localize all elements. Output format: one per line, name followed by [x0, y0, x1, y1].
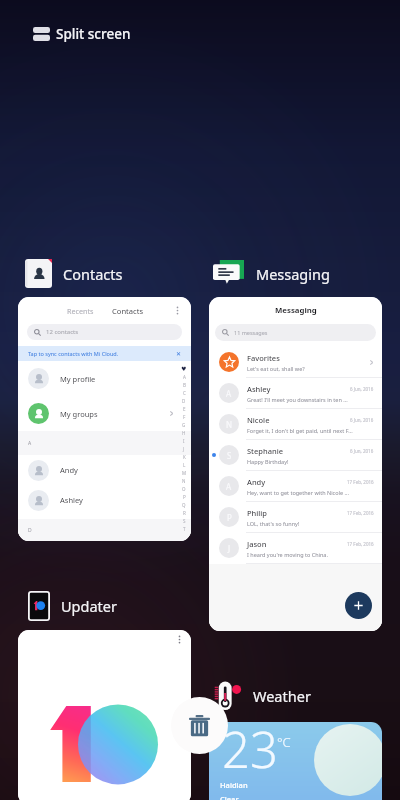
- button[interactable]: Recents: [18, 297, 191, 541]
- staticText: My groups: [60, 409, 98, 419]
- button[interactable]: [18, 630, 191, 800]
- staticText: Philip: [247, 508, 268, 518]
- staticText: C: [183, 390, 186, 396]
- staticText: S: [183, 518, 186, 524]
- staticText: I: [183, 438, 185, 444]
- button[interactable]: 23: [209, 722, 382, 800]
- staticText: 23: [222, 722, 278, 783]
- staticText: 6 Jun, 2016: [350, 448, 374, 454]
- staticText: Forget it, I don't bl get paid, until ne…: [247, 427, 353, 434]
- staticText: A: [226, 481, 232, 492]
- button[interactable]: Messaging: [209, 297, 382, 631]
- button[interactable]: N: [209, 409, 382, 439]
- staticText: R: [183, 510, 186, 516]
- staticText: My profile: [60, 374, 96, 384]
- button[interactable]: 12 contacts: [27, 324, 182, 340]
- staticText: Andy: [247, 477, 266, 487]
- staticText: °C: [277, 733, 291, 751]
- staticText: Tap to sync contacts with Mi Cloud.: [28, 350, 119, 357]
- staticText: Jason: [247, 539, 267, 549]
- staticText: M: [182, 470, 187, 476]
- button[interactable]: 11 messages: [215, 324, 376, 341]
- staticText: Favorites: [247, 353, 280, 363]
- staticText: Contacts: [63, 264, 123, 284]
- button[interactable]: Favorites: [209, 347, 382, 377]
- button[interactable]: Delete all: [171, 697, 228, 754]
- staticText: S: [227, 450, 232, 461]
- staticText: Andy: [60, 465, 78, 475]
- staticText: 6 Jun, 2016: [350, 417, 374, 423]
- staticText: Weather: [253, 686, 311, 706]
- staticText: 17 Feb, 2016: [347, 510, 374, 516]
- button[interactable]: My groups: [18, 396, 191, 431]
- button[interactable]: My profile: [18, 361, 191, 396]
- button[interactable]: Messaging: [213, 260, 330, 287]
- staticText: Clear: [220, 794, 239, 800]
- staticText: A: [28, 440, 32, 447]
- button[interactable]: Split screen: [33, 25, 131, 43]
- staticText: Contacts: [112, 306, 144, 316]
- staticText: 17 Feb, 2016: [347, 541, 374, 547]
- staticText: J: [228, 543, 231, 554]
- button[interactable]: J: [209, 533, 382, 563]
- staticText: Updater: [61, 596, 117, 616]
- staticText: Messaging: [256, 264, 330, 284]
- staticText: Stephanie: [247, 446, 283, 456]
- staticText: B: [183, 382, 186, 388]
- staticText: A: [183, 374, 186, 380]
- staticText: 11 messages: [234, 329, 268, 336]
- staticText: L: [183, 462, 186, 468]
- button[interactable]: A: [209, 471, 382, 501]
- staticText: P: [227, 512, 232, 523]
- staticText: Nicole: [247, 415, 270, 425]
- staticText: Recents: [67, 306, 94, 316]
- staticText: N: [226, 419, 233, 430]
- button[interactable]: Weather: [212, 681, 311, 711]
- staticText: E: [183, 406, 186, 412]
- staticText: 17 Feb, 2016: [347, 479, 374, 485]
- staticText: P: [183, 494, 186, 500]
- staticText: Let's eat out, shall we?: [247, 365, 305, 372]
- staticText: N: [182, 478, 186, 484]
- staticText: Ashley: [60, 495, 83, 505]
- staticText: F: [183, 414, 186, 420]
- staticText: H: [182, 430, 186, 436]
- staticText: T: [183, 526, 186, 532]
- staticText: ✕: [176, 350, 182, 357]
- staticText: Haidian: [220, 780, 248, 790]
- staticText: Messaging: [275, 305, 317, 316]
- button[interactable]: Andy: [18, 455, 191, 485]
- staticText: Great! I'll meet you downstairs in ten .…: [247, 396, 348, 403]
- staticText: K: [183, 454, 186, 460]
- staticText: G: [182, 422, 186, 428]
- staticText: I heard you're moving to China.: [247, 551, 328, 558]
- button[interactable]: New message: [345, 592, 372, 619]
- button[interactable]: Contacts: [25, 259, 123, 288]
- button[interactable]: Tap to sync contacts with Mi Cloud.: [18, 346, 191, 361]
- staticText: Q: [182, 502, 186, 508]
- staticText: 12 contacts: [46, 328, 79, 336]
- staticText: Hey, want to get together with Nicole ..…: [247, 489, 349, 496]
- staticText: J: [183, 446, 185, 452]
- staticText: Happy Birthday!: [247, 458, 289, 465]
- button[interactable]: A: [209, 378, 382, 408]
- button[interactable]: P: [209, 502, 382, 532]
- staticText: Ashley: [247, 384, 271, 394]
- staticText: O: [182, 486, 186, 492]
- staticText: D: [28, 527, 32, 534]
- button[interactable]: Ashley: [18, 485, 191, 515]
- button[interactable]: S: [209, 440, 382, 470]
- staticText: D: [182, 398, 186, 404]
- staticText: 6 Jun, 2016: [350, 386, 374, 392]
- staticText: ♥: [181, 365, 187, 372]
- button[interactable]: Updater: [28, 591, 117, 621]
- staticText: A: [226, 388, 232, 399]
- staticText: LOL, that's so funny!: [247, 520, 300, 527]
- staticText: Split screen: [56, 25, 131, 43]
